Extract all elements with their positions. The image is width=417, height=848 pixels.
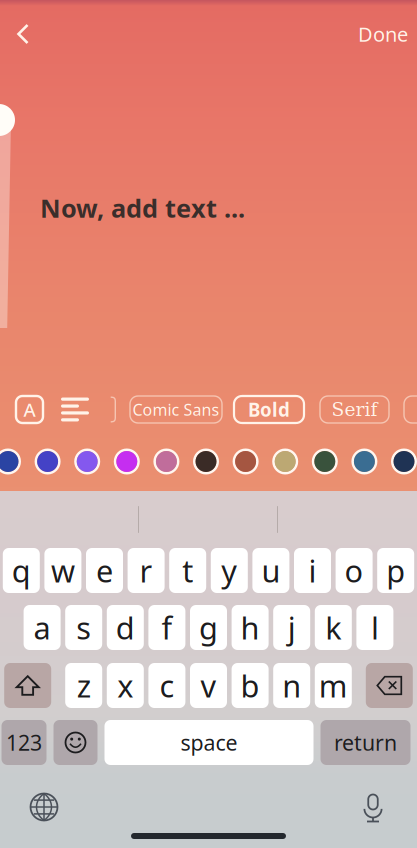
staticText: w	[51, 550, 75, 591]
staticText: s	[76, 607, 91, 648]
staticText: Serif	[331, 399, 377, 420]
button[interactable]: Colour	[350, 447, 378, 475]
button[interactable]: l	[356, 605, 393, 650]
staticText: y	[221, 550, 237, 591]
button[interactable]: Comic Sans	[130, 396, 222, 423]
button[interactable]: Colour	[192, 447, 220, 475]
button[interactable]: Colour	[113, 447, 141, 475]
button[interactable]: space	[104, 720, 313, 765]
staticText: return	[334, 728, 397, 757]
button[interactable]: return	[320, 720, 410, 765]
staticText: Comic Sans	[132, 399, 219, 420]
button[interactable]: t	[169, 548, 206, 593]
button[interactable]: r	[128, 548, 165, 593]
button[interactable]: Text alignment	[61, 396, 89, 423]
staticText: c	[159, 665, 174, 706]
button[interactable]: v	[190, 663, 227, 708]
staticText: m	[319, 665, 348, 706]
button[interactable]: Colour	[0, 447, 22, 475]
staticText: g	[199, 607, 218, 648]
staticText: e	[96, 550, 113, 591]
staticText: Now, add text ...	[40, 191, 245, 225]
button[interactable]: Shift	[4, 663, 51, 708]
button[interactable]: i	[294, 548, 331, 593]
staticText: d	[116, 607, 135, 648]
staticText: j	[288, 607, 296, 648]
button[interactable]: e	[86, 548, 123, 593]
button[interactable]: Next font	[404, 396, 417, 423]
button[interactable]: Serif	[320, 396, 389, 423]
button[interactable]: d	[107, 605, 144, 650]
button[interactable]: f	[148, 605, 185, 650]
staticText: z	[77, 665, 91, 706]
button[interactable]: 123	[1, 720, 46, 765]
staticText: p	[386, 550, 405, 591]
button[interactable]: Colour	[271, 447, 299, 475]
button[interactable]: j	[273, 605, 310, 650]
button[interactable]: o	[336, 548, 373, 593]
staticText: r	[140, 550, 153, 591]
button[interactable]: b	[232, 663, 269, 708]
staticText: h	[241, 607, 260, 648]
button[interactable]: n	[273, 663, 310, 708]
button[interactable]: Colour	[73, 447, 101, 475]
staticText: Bold	[248, 397, 290, 422]
button[interactable]: Colour	[390, 447, 417, 475]
button[interactable]: Back	[0, 10, 46, 58]
button[interactable]: Bold	[234, 396, 304, 423]
staticText: Done	[358, 21, 408, 47]
staticText: i	[308, 550, 316, 591]
staticText: k	[325, 607, 341, 648]
button[interactable]: w	[44, 548, 81, 593]
button[interactable]: y	[211, 548, 248, 593]
button[interactable]: Switch keyboard	[22, 792, 66, 822]
button[interactable]: Emoji keyboard	[53, 720, 97, 765]
button[interactable]: Colour	[34, 447, 62, 475]
button[interactable]: c	[148, 663, 185, 708]
staticText: u	[261, 550, 280, 591]
button[interactable]: Delete	[366, 663, 413, 708]
staticText: t	[182, 550, 193, 591]
button[interactable]: s	[65, 605, 102, 650]
button[interactable]: Colour	[232, 447, 260, 475]
button[interactable]: h	[232, 605, 269, 650]
staticText: a	[34, 607, 51, 648]
staticText: q	[12, 550, 31, 591]
button[interactable]: g	[190, 605, 227, 650]
button[interactable]: Colour	[311, 447, 339, 475]
staticText: b	[241, 665, 260, 706]
button[interactable]: k	[315, 605, 352, 650]
staticText: l	[371, 607, 379, 648]
button[interactable]: u	[252, 548, 289, 593]
button[interactable]: m	[315, 663, 352, 708]
button[interactable]: Previous font	[110, 396, 116, 422]
button[interactable]: Done	[349, 10, 417, 58]
staticText: o	[345, 550, 364, 591]
button[interactable]: z	[65, 663, 102, 708]
staticText: f	[161, 607, 172, 648]
button[interactable]: Dictation	[351, 792, 395, 822]
staticText: A	[23, 397, 35, 422]
staticText: space	[180, 728, 237, 757]
button[interactable]: Colour	[152, 447, 180, 475]
staticText: 123	[6, 728, 42, 757]
staticText: v	[200, 665, 216, 706]
button[interactable]: Text style	[16, 396, 43, 423]
button[interactable]: a	[24, 605, 61, 650]
staticText: n	[282, 665, 301, 706]
button[interactable]: q	[3, 548, 40, 593]
button[interactable]: x	[107, 663, 144, 708]
staticText: x	[117, 665, 133, 706]
button[interactable]: p	[377, 548, 414, 593]
